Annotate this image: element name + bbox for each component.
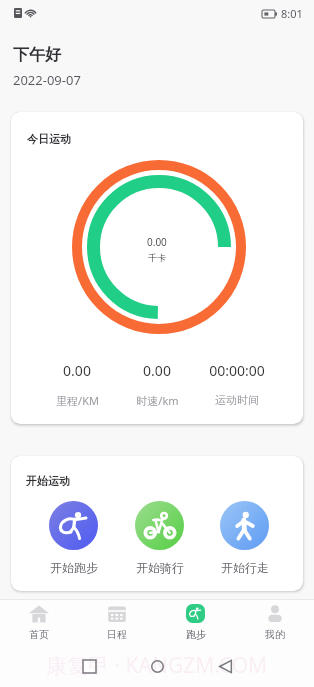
staticText: 时速/km: [136, 393, 179, 408]
staticText: 00:00:00: [209, 361, 265, 380]
staticText: 千卡: [148, 252, 166, 263]
staticText: 今日运动: [27, 132, 71, 146]
staticText: 开始运动: [26, 474, 70, 488]
button[interactable]: 我的: [235, 604, 314, 641]
button[interactable]: Recent apps: [74, 651, 104, 681]
staticText: 开始行走: [221, 560, 269, 575]
staticText: 0.00: [143, 361, 171, 380]
staticText: 下午好: [13, 45, 61, 65]
staticText: 8:01: [281, 6, 303, 21]
button[interactable]: 跑步: [156, 604, 235, 641]
staticText: 里程/KM: [56, 393, 99, 408]
button[interactable]: Back: [210, 651, 240, 681]
button[interactable]: 开始行走: [220, 501, 269, 575]
button[interactable]: 日程: [78, 604, 156, 641]
button[interactable]: 开始跑步: [49, 501, 98, 575]
staticText: 0.00: [147, 235, 167, 249]
staticText: 我的: [265, 628, 285, 641]
staticText: 2022-09-07: [13, 71, 81, 89]
button[interactable]: Home: [142, 651, 172, 681]
staticText: 跑步: [186, 628, 206, 641]
staticText: 首页: [29, 628, 49, 641]
staticText: 康复甲 · KANGZM.COM: [46, 651, 268, 680]
button[interactable]: 首页: [0, 604, 78, 641]
staticText: 开始骑行: [136, 560, 184, 575]
staticText: 0.00: [63, 361, 91, 380]
staticText: 运动时间: [215, 393, 259, 407]
button[interactable]: 开始骑行: [135, 501, 184, 575]
staticText: 日程: [107, 628, 127, 641]
staticText: 开始跑步: [50, 560, 98, 575]
